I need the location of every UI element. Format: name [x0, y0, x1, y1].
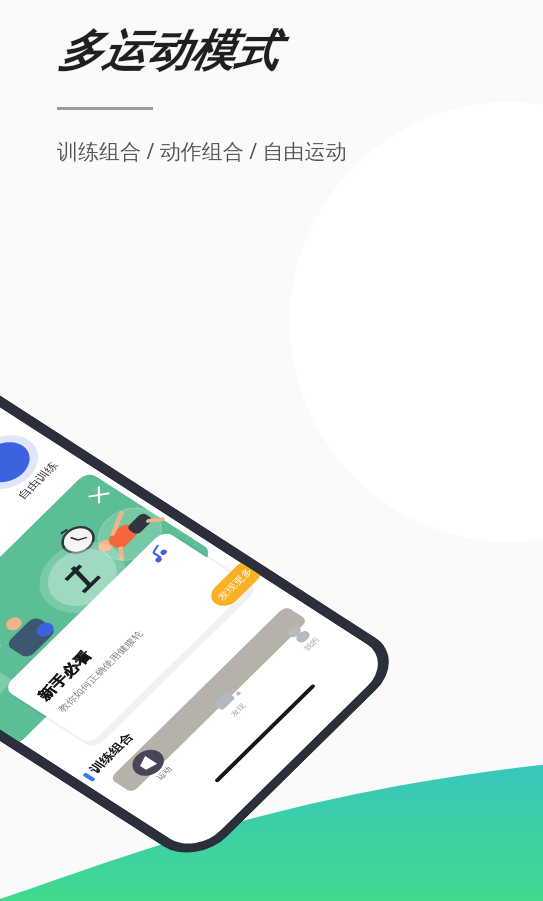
- staticText: 运动: [154, 765, 173, 781]
- staticText: 新手必看: [34, 648, 96, 704]
- staticText: 多运动模式: [57, 24, 277, 79]
- staticText: 自由训练: [14, 459, 61, 501]
- staticText: 发现更多: [215, 566, 255, 602]
- staticText: 发现: [228, 702, 248, 718]
- staticText: 我的: [302, 636, 321, 652]
- staticText: 训练组合 / 动作组合 / 自由运动: [57, 137, 347, 166]
- staticText: 训练组合: [86, 730, 136, 776]
- staticText: 教你如何正确使用健腹轮: [55, 628, 146, 714]
